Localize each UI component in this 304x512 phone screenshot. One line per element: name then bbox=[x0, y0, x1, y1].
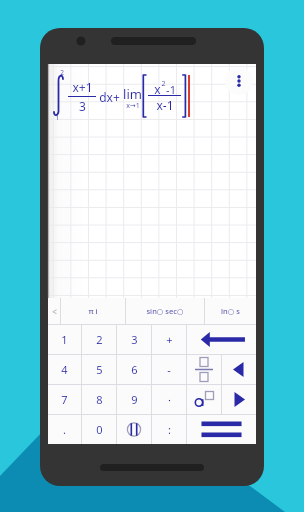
button[interactable]: 8 bbox=[82, 385, 116, 414]
staticText: - bbox=[167, 362, 171, 377]
staticText: x→1 bbox=[126, 101, 140, 111]
staticText: -1 bbox=[166, 82, 176, 97]
button[interactable]: 0 bbox=[82, 415, 116, 444]
button[interactable]: π i bbox=[61, 298, 125, 324]
button[interactable]: Previous bbox=[48, 298, 60, 324]
button[interactable]: Backspace bbox=[187, 325, 256, 354]
button[interactable]: . bbox=[48, 415, 81, 444]
staticText: 5 bbox=[96, 362, 103, 377]
staticText: 4 bbox=[61, 362, 68, 377]
button[interactable]: · bbox=[152, 385, 186, 414]
button[interactable]: 7 bbox=[48, 385, 81, 414]
staticText: 0 bbox=[96, 422, 103, 437]
staticText: . bbox=[63, 422, 66, 437]
button[interactable]: 1 bbox=[48, 325, 81, 354]
staticText: x bbox=[154, 81, 161, 97]
staticText: lim bbox=[123, 85, 142, 103]
staticText: 6 bbox=[131, 362, 138, 377]
staticText: ln○ s bbox=[221, 306, 240, 316]
staticText: 2 bbox=[96, 332, 103, 347]
staticText: < bbox=[52, 306, 57, 317]
staticText: + bbox=[166, 332, 173, 347]
button[interactable]: Fraction bbox=[187, 355, 221, 384]
staticText: · bbox=[168, 392, 171, 407]
button[interactable]: 6 bbox=[117, 355, 151, 384]
staticText: x-1 bbox=[156, 97, 174, 113]
staticText: 7 bbox=[61, 392, 68, 407]
staticText: 1 bbox=[55, 113, 59, 122]
button[interactable]: ln○ s bbox=[205, 298, 256, 324]
button[interactable]: - bbox=[152, 355, 186, 384]
button[interactable]: Absolute value bbox=[117, 415, 151, 444]
staticText: 2 bbox=[60, 68, 64, 77]
button[interactable]: 9 bbox=[117, 385, 151, 414]
staticText: sin○ sec○ bbox=[146, 306, 184, 316]
button[interactable]: Move left bbox=[222, 355, 256, 384]
staticText: dx+ bbox=[99, 89, 120, 105]
button[interactable]: : bbox=[152, 415, 186, 444]
button[interactable]: 4 bbox=[48, 355, 81, 384]
staticText: π i bbox=[88, 306, 98, 316]
staticText: 3 bbox=[131, 332, 138, 347]
button[interactable]: Move right bbox=[222, 385, 256, 414]
button[interactable]: 3 bbox=[117, 325, 151, 354]
staticText: 9 bbox=[131, 392, 138, 407]
staticText: 8 bbox=[96, 392, 103, 407]
staticText: x+1 bbox=[72, 79, 93, 95]
staticText: 2 bbox=[161, 79, 166, 89]
staticText: 3 bbox=[79, 98, 86, 114]
button[interactable]: + bbox=[152, 325, 186, 354]
staticText: : bbox=[168, 422, 171, 437]
button[interactable]: 2 bbox=[82, 325, 116, 354]
button[interactable]: More options bbox=[225, 67, 253, 95]
button[interactable]: 5 bbox=[82, 355, 116, 384]
button[interactable]: Equals bbox=[187, 415, 256, 444]
staticText: 1 bbox=[61, 332, 68, 347]
button[interactable]: Exponent bbox=[187, 385, 221, 414]
button[interactable]: sin○ sec○ bbox=[126, 298, 204, 324]
